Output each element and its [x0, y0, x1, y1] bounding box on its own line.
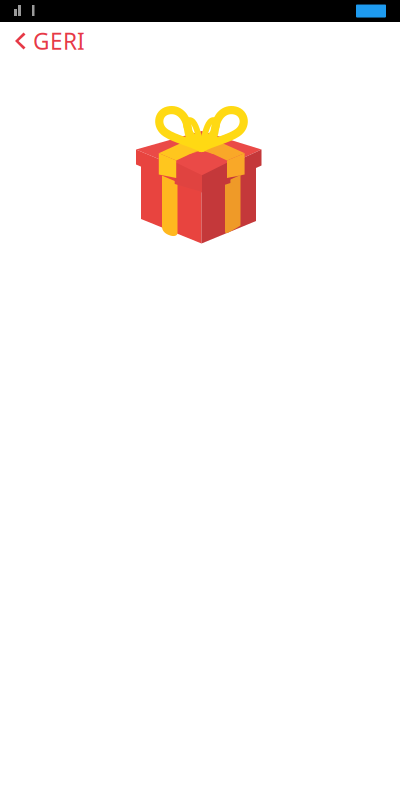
button[interactable]: GERI	[0, 18, 99, 64]
staticText: GERI	[33, 26, 85, 56]
